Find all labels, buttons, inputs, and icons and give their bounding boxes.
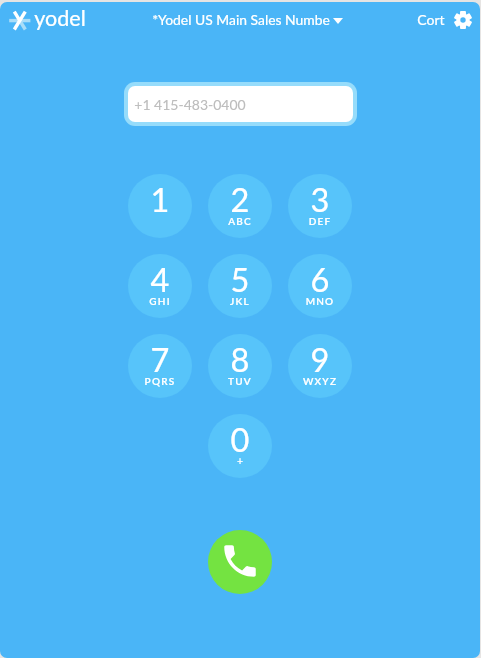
button[interactable]: 1 — [128, 174, 192, 238]
button[interactable]: 7 — [128, 334, 192, 398]
staticText: TUV — [208, 375, 272, 387]
button[interactable]: 6 — [288, 254, 352, 318]
button[interactable]: +1 415-483-0400 — [128, 86, 353, 122]
button[interactable]: 2 — [208, 174, 272, 238]
staticText: WXYZ — [288, 375, 352, 387]
staticText: *Yodel US Main Sales Numbe — [152, 11, 330, 28]
button[interactable]: 0 — [208, 414, 272, 478]
button[interactable]: Cort — [417, 11, 445, 28]
staticText: 3 — [288, 180, 352, 219]
staticText: 7 — [128, 340, 192, 379]
staticText: yodel — [34, 5, 86, 31]
button[interactable]: Settings — [452, 9, 473, 30]
staticText: 8 — [208, 340, 272, 379]
staticText: 1 — [128, 180, 192, 219]
staticText: 9 — [288, 340, 352, 379]
staticText: PQRS — [128, 375, 192, 387]
button[interactable]: Yodel home — [5, 6, 89, 36]
staticText: 2 — [208, 180, 272, 219]
staticText: +1 415-483-0400 — [134, 96, 246, 113]
staticText: + — [208, 455, 272, 468]
button[interactable]: 8 — [208, 334, 272, 398]
staticText: 6 — [288, 260, 352, 299]
button[interactable]: Call — [208, 530, 272, 594]
staticText: 0 — [208, 420, 272, 459]
button[interactable]: 9 — [288, 334, 352, 398]
staticText: GHI — [128, 295, 192, 307]
staticText: DEF — [288, 215, 352, 227]
staticText: 4 — [128, 260, 192, 299]
staticText: ABC — [208, 215, 272, 227]
button[interactable]: 3 — [288, 174, 352, 238]
staticText: JKL — [208, 295, 272, 307]
button[interactable]: *Yodel US Main Sales Numbe — [147, 10, 347, 34]
staticText: MNO — [288, 295, 352, 307]
staticText: 5 — [208, 260, 272, 299]
button[interactable]: 5 — [208, 254, 272, 318]
button[interactable]: 4 — [128, 254, 192, 318]
